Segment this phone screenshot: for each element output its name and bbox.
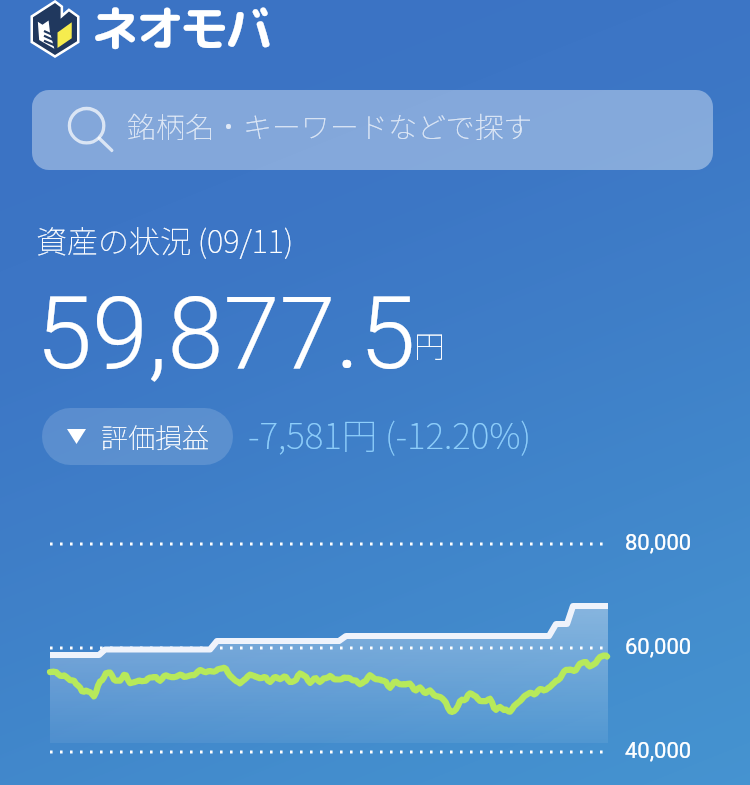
- staticText: 評価損益: [101, 417, 209, 456]
- staticText: -7,581円 (-12.20%): [248, 408, 532, 459]
- staticText: 59,877.5: [36, 274, 416, 392]
- staticText: 80,000: [625, 530, 692, 556]
- staticText: ネオモバ: [91, 0, 270, 54]
- button[interactable]: 評価損益: [42, 408, 233, 465]
- staticText: 40,000: [625, 738, 692, 764]
- other: 検索: [68, 107, 114, 153]
- staticText: 60,000: [625, 634, 692, 660]
- staticText: 円: [414, 322, 445, 367]
- button[interactable]: 検索: [32, 90, 713, 170]
- button[interactable]: ネオモバ ロゴ: [20, 0, 290, 60]
- staticText: 資産の状況 (09/11): [36, 217, 294, 262]
- other: ネオモバ ロゴ: [33, 3, 77, 55]
- staticText: 銘柄名・キーワードなどで探す: [127, 104, 533, 146]
